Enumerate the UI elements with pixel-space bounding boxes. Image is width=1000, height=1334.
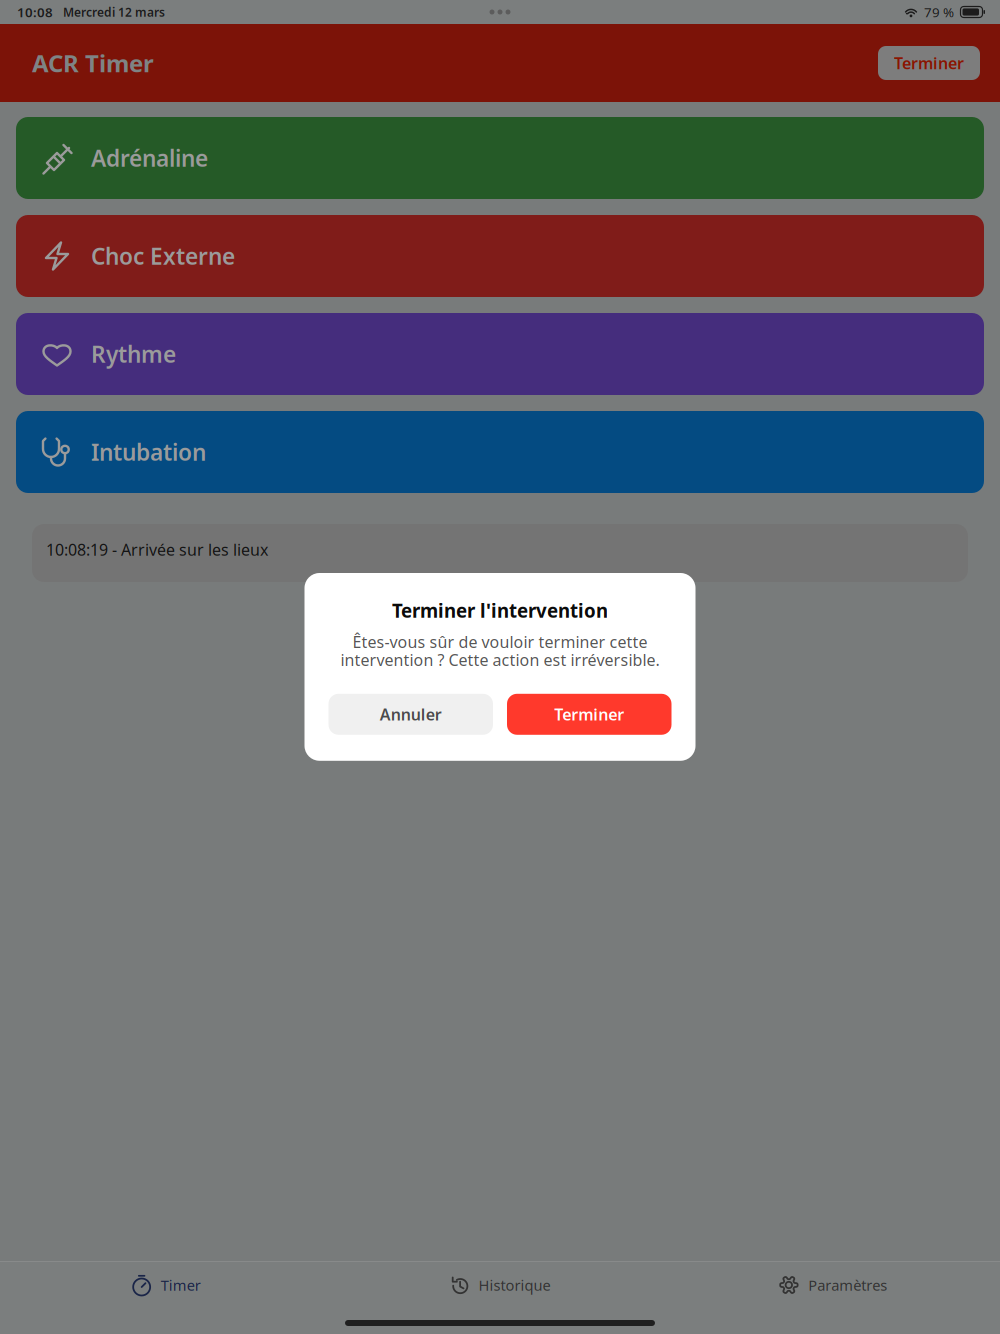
staticText: Rythme bbox=[91, 339, 176, 369]
button[interactable]: Intubation bbox=[16, 411, 984, 493]
button[interactable]: Terminer bbox=[878, 46, 980, 80]
button[interactable]: Adrénaline bbox=[16, 117, 984, 199]
staticText: Êtes-vous sûr de vouloir terminer cette bbox=[352, 631, 647, 652]
staticText: 10:08:19 - Arrivée sur les lieux bbox=[46, 539, 268, 560]
staticText: Historique bbox=[478, 1275, 550, 1295]
staticText: Terminer l'intervention bbox=[392, 598, 608, 623]
staticText: Timer bbox=[161, 1275, 201, 1295]
staticText: 79 % bbox=[924, 3, 954, 21]
button[interactable]: Terminer bbox=[507, 694, 671, 735]
staticText: Annuler bbox=[380, 704, 442, 725]
staticText: Paramètres bbox=[808, 1275, 887, 1295]
button[interactable]: Annuler bbox=[328, 694, 493, 735]
staticText: 10:08 bbox=[17, 3, 53, 21]
staticText: Intubation bbox=[91, 437, 206, 467]
button[interactable]: Timer bbox=[0, 1262, 333, 1308]
staticText: Adrénaline bbox=[91, 143, 208, 173]
button[interactable]: Historique bbox=[333, 1262, 667, 1308]
button[interactable]: Choc Externe bbox=[16, 215, 984, 297]
staticText: Choc Externe bbox=[91, 241, 235, 271]
staticText: Mercredi 12 mars bbox=[63, 4, 165, 20]
staticText: Terminer bbox=[554, 704, 624, 725]
staticText: intervention ? Cette action est irrévers… bbox=[340, 649, 659, 670]
staticText: Terminer bbox=[894, 52, 964, 74]
button[interactable]: Rythme bbox=[16, 313, 984, 395]
staticText: ACR Timer bbox=[32, 47, 154, 79]
button[interactable]: Paramètres bbox=[667, 1262, 1000, 1308]
